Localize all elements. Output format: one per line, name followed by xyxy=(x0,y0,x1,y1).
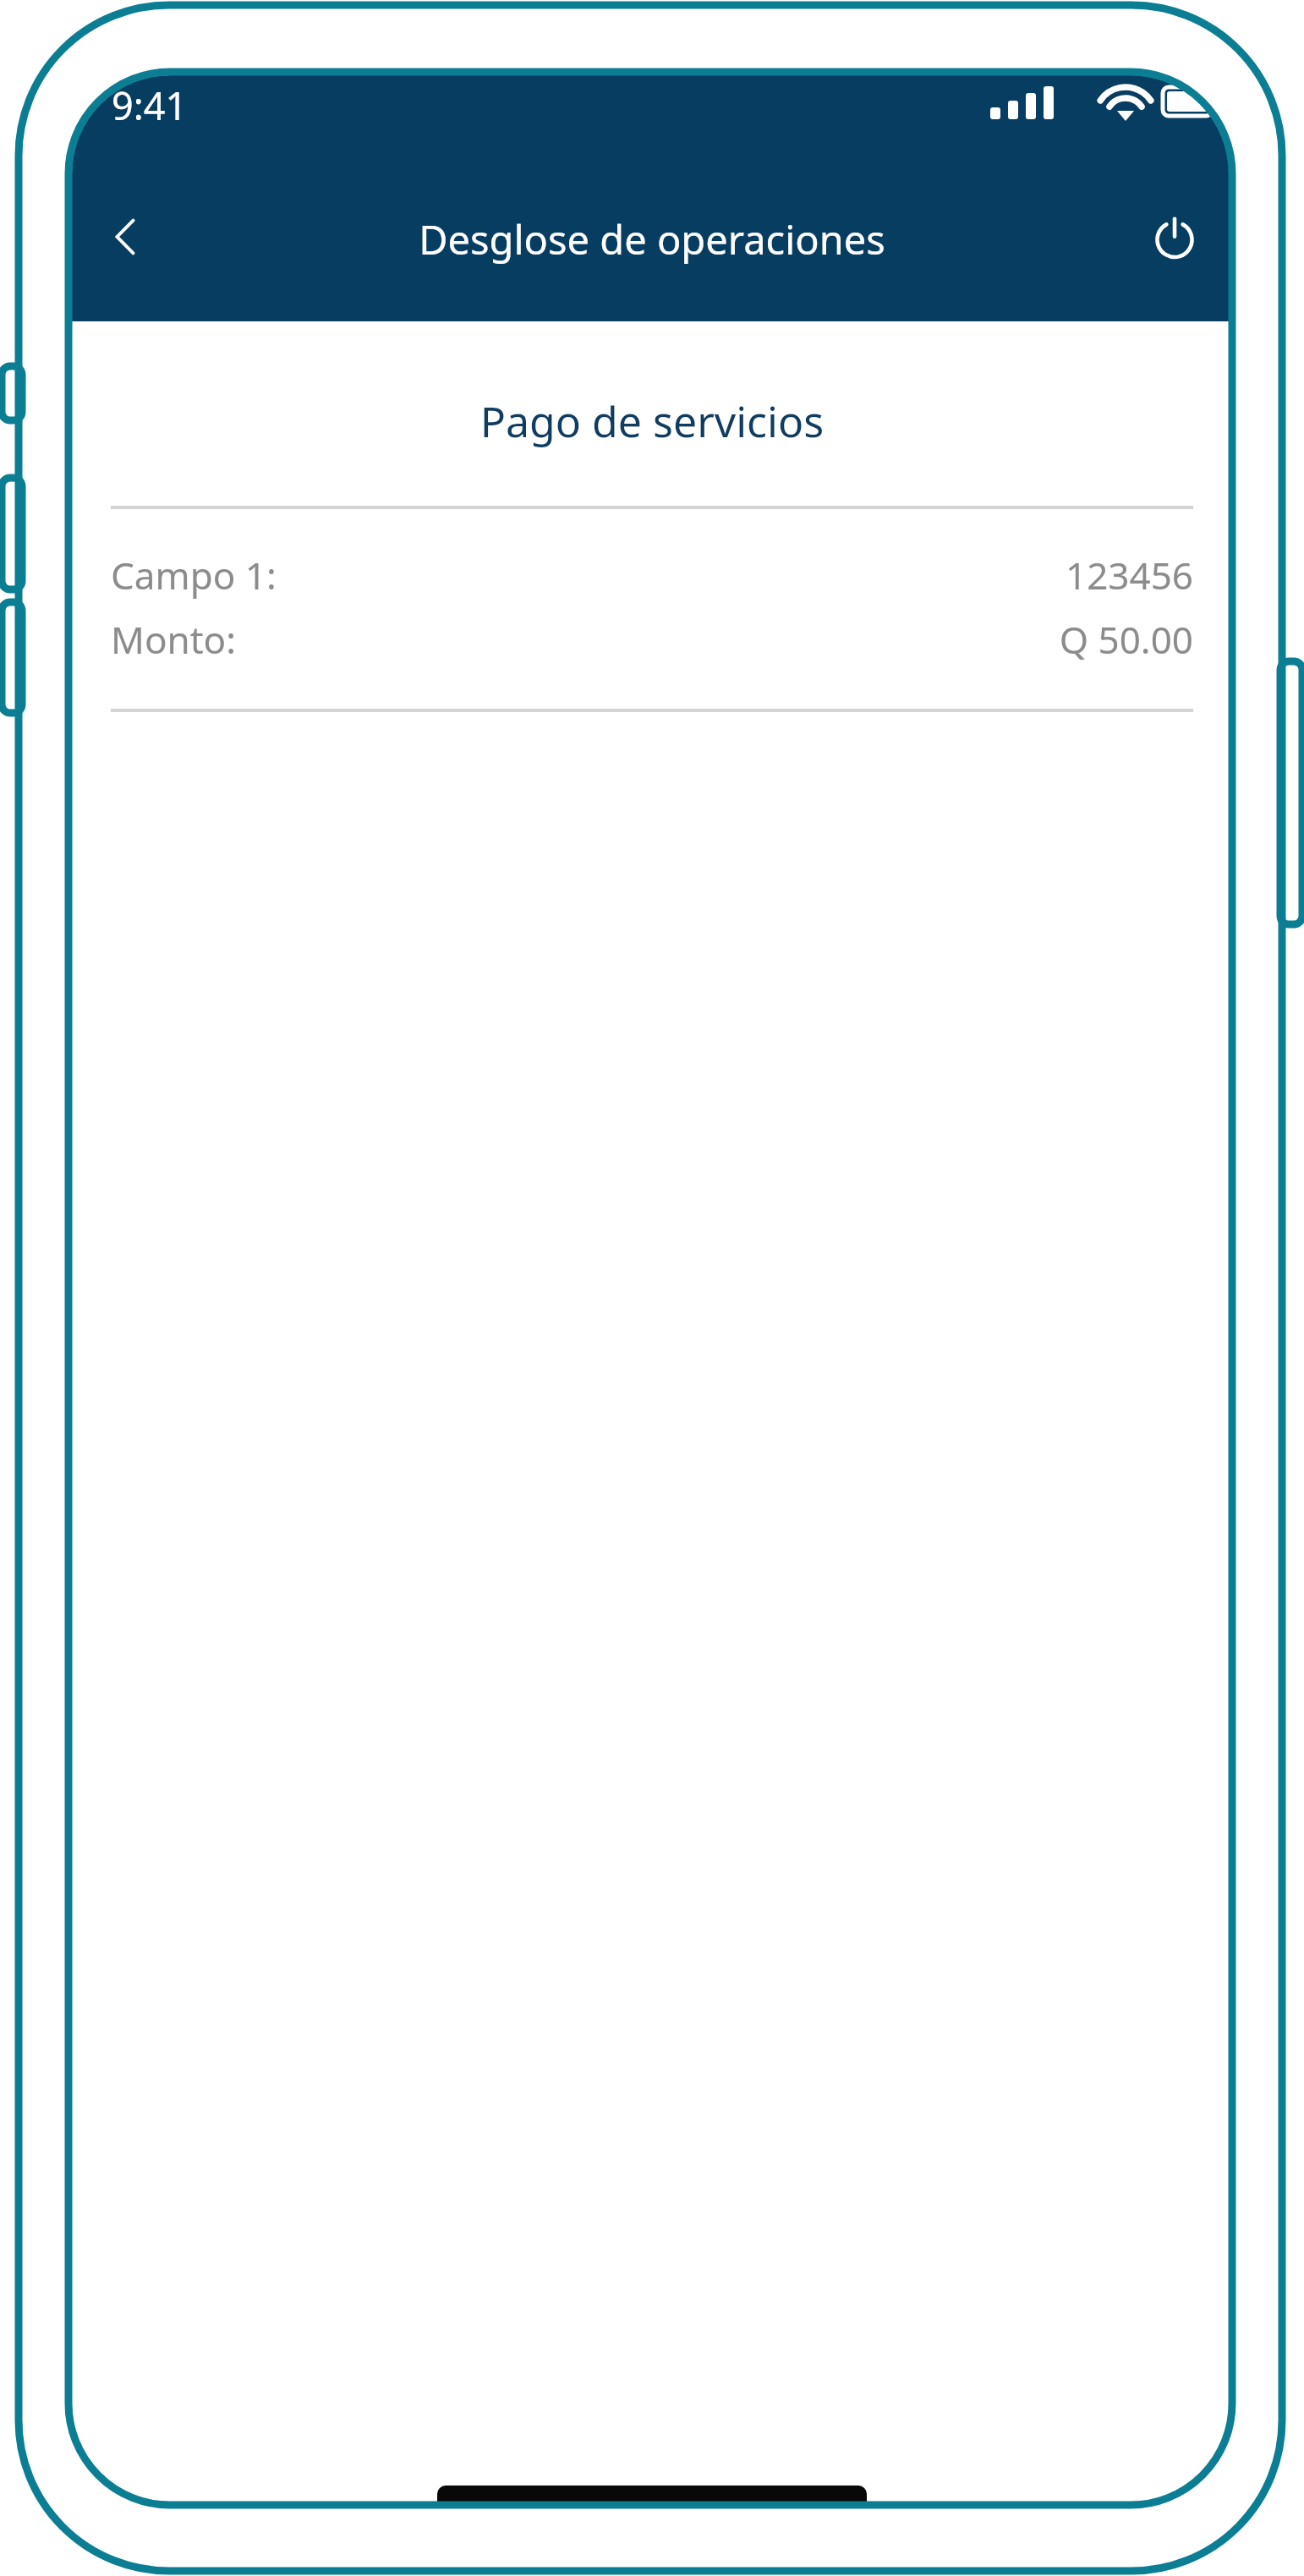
button[interactable]: Campo 1: xyxy=(72,550,1232,600)
staticText: Monto: xyxy=(111,614,237,665)
staticText: Q 50.00 xyxy=(1059,614,1193,665)
staticText: 9:41 xyxy=(112,79,188,131)
staticText: 123456 xyxy=(1065,550,1193,600)
staticText: Pago de servicios xyxy=(72,392,1232,450)
button[interactable]: Monto: xyxy=(72,614,1232,665)
staticText: Desglose de operaciones xyxy=(72,212,1232,266)
button[interactable]: Back xyxy=(89,200,162,273)
staticText: Campo 1: xyxy=(111,550,277,600)
button[interactable]: Log out xyxy=(1134,200,1215,273)
